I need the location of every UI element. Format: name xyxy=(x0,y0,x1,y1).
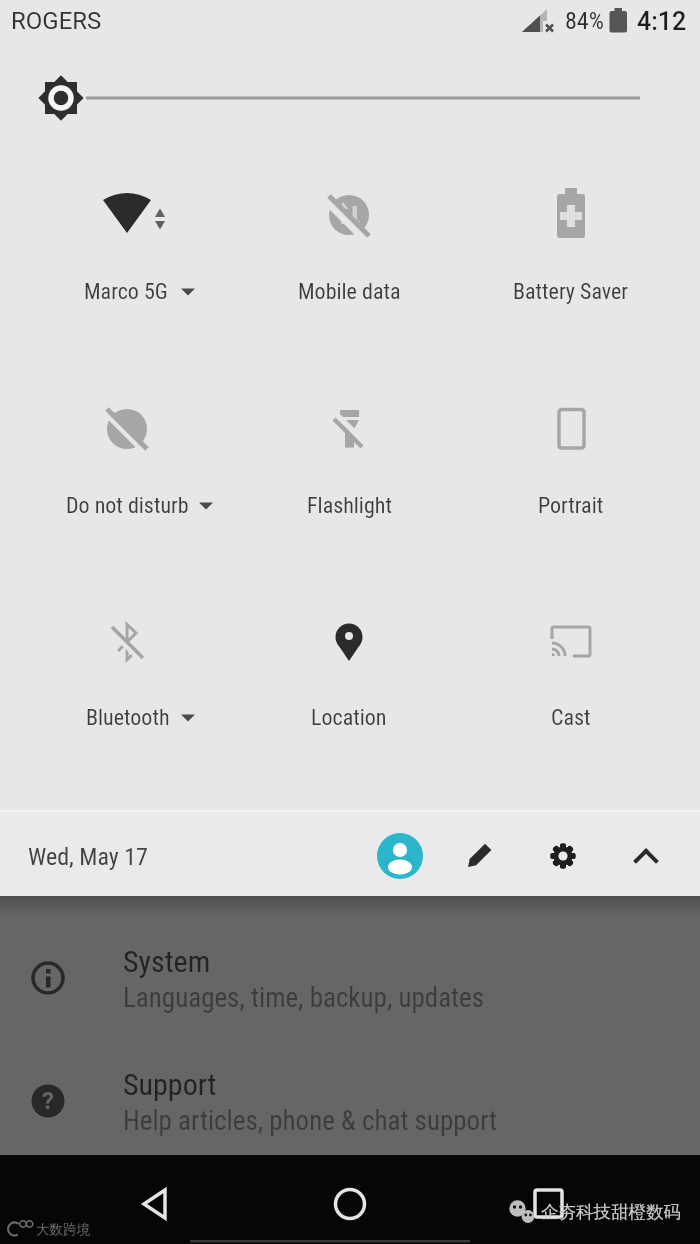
staticText: ROGERS xyxy=(11,7,102,35)
button[interactable] xyxy=(495,1168,595,1240)
button[interactable] xyxy=(0,925,700,1035)
staticText: Marco 5G xyxy=(84,279,168,305)
button[interactable] xyxy=(17,394,237,534)
button[interactable] xyxy=(300,1168,400,1240)
staticText: Flashlight xyxy=(307,493,392,519)
staticText: Portrait xyxy=(538,493,604,519)
button[interactable] xyxy=(239,394,459,534)
button[interactable] xyxy=(239,180,459,320)
button[interactable] xyxy=(37,74,85,122)
button[interactable] xyxy=(17,180,237,320)
staticText: Help articles, phone & chat support xyxy=(123,1105,498,1137)
staticText: 企夯科技甜橙数码 xyxy=(541,1201,681,1223)
button[interactable] xyxy=(461,394,681,534)
button[interactable] xyxy=(0,1048,700,1158)
staticText: Location xyxy=(311,705,387,731)
staticText: Cast xyxy=(551,705,591,731)
staticText: ? xyxy=(42,1087,54,1115)
button[interactable] xyxy=(17,607,237,747)
staticText: System xyxy=(123,944,211,979)
button[interactable] xyxy=(539,832,587,880)
staticText: Mobile data xyxy=(298,279,401,305)
staticText: Languages, time, backup, updates xyxy=(123,982,485,1014)
button[interactable] xyxy=(622,832,670,880)
button[interactable] xyxy=(455,832,503,880)
button[interactable] xyxy=(376,832,424,880)
button[interactable] xyxy=(239,607,459,747)
staticText: Support xyxy=(123,1067,217,1102)
button[interactable] xyxy=(461,607,681,747)
staticText: Battery Saver xyxy=(513,279,629,305)
staticText: Do not disturb xyxy=(66,493,189,519)
staticText: Bluetooth xyxy=(86,705,170,731)
button[interactable] xyxy=(461,180,681,320)
staticText: 4:12 xyxy=(637,7,687,36)
button[interactable] xyxy=(105,1168,205,1240)
staticText: 大数跨境 xyxy=(36,1221,90,1238)
staticText: 84% xyxy=(565,7,604,35)
staticText: Wed, May 17 xyxy=(28,843,148,871)
